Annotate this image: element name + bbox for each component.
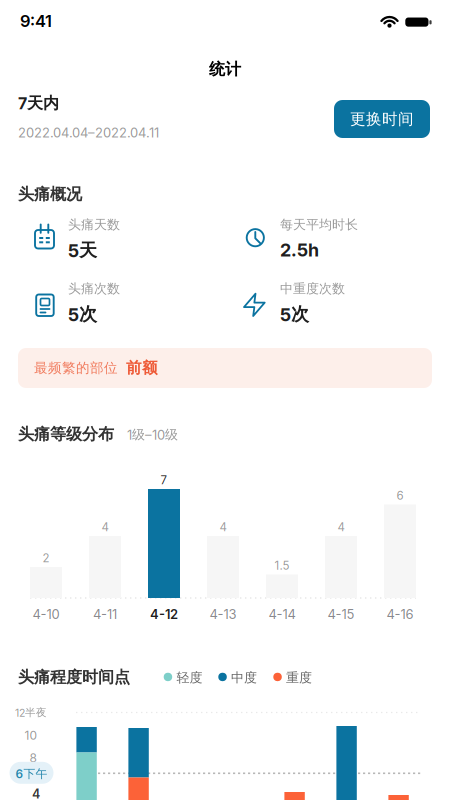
- staticText: 6: [396, 488, 403, 502]
- staticText: 4-11: [93, 606, 117, 622]
- staticText: 头痛等级分布: [18, 424, 114, 444]
- staticText: 4-13: [209, 606, 236, 622]
- staticText: 8: [29, 750, 36, 765]
- staticText: 4: [219, 520, 226, 534]
- staticText: 更换时间: [350, 109, 414, 129]
- staticText: 12半夜: [15, 706, 47, 719]
- staticText: 头痛次数: [68, 280, 120, 297]
- staticText: 4-10: [32, 606, 59, 622]
- staticText: 7天内: [18, 93, 59, 113]
- staticText: 最频繁的部位: [34, 359, 118, 376]
- staticText: 中重度次数: [280, 280, 345, 297]
- staticText: 重度: [286, 669, 312, 686]
- staticText: 10: [24, 728, 37, 742]
- staticText: 5次: [280, 303, 309, 326]
- staticText: 每天平均时长: [280, 216, 358, 233]
- staticText: 前额: [126, 358, 158, 377]
- staticText: 1.5: [274, 558, 289, 572]
- staticText: 4: [337, 520, 344, 534]
- staticText: 头痛概况: [18, 184, 82, 204]
- staticText: 4: [32, 786, 40, 800]
- staticText: 统计: [209, 59, 241, 79]
- staticText: 4-12: [150, 606, 178, 622]
- staticText: 轻度: [176, 669, 202, 686]
- staticText: 4-16: [386, 606, 413, 622]
- staticText: 2.5h: [280, 239, 319, 261]
- staticText: 1级–10级: [127, 426, 178, 443]
- staticText: 9:41: [20, 11, 52, 31]
- staticText: 7: [160, 473, 167, 487]
- staticText: 头痛天数: [68, 216, 120, 233]
- staticText: 6下午: [15, 766, 47, 781]
- button[interactable]: 更换时间: [334, 100, 430, 138]
- staticText: 2: [42, 551, 49, 565]
- staticText: 头痛程度时间点: [18, 667, 130, 687]
- staticText: 2022.04.04–2022.04.11: [18, 125, 159, 141]
- staticText: 4: [101, 520, 108, 534]
- staticText: 4-15: [327, 606, 354, 622]
- staticText: 4-14: [268, 606, 295, 622]
- staticText: 中度: [231, 669, 257, 686]
- staticText: 5次: [68, 303, 97, 326]
- staticText: 5天: [68, 239, 97, 262]
